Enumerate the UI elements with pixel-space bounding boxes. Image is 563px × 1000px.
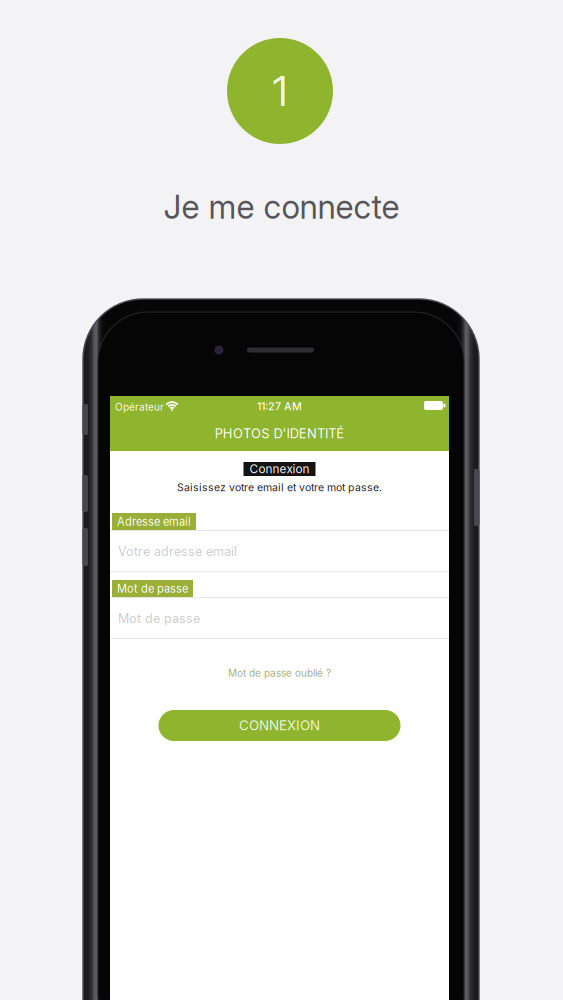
staticText: 1 <box>272 66 287 116</box>
staticText: Votre adresse email <box>118 544 237 559</box>
staticText: Mot de passe oublié ? <box>228 667 331 679</box>
staticText: Adresse email <box>117 515 191 528</box>
button[interactable]: Votre adresse email <box>110 531 449 572</box>
staticText: Mot de passe <box>117 582 188 595</box>
staticText: CONNEXION <box>239 717 320 733</box>
staticText: Saisissez votre email et votre mot passe… <box>177 481 382 494</box>
staticText: Je me connecte <box>163 187 399 227</box>
staticText: Mot de passe <box>118 611 200 626</box>
button[interactable]: Mot de passe <box>110 598 449 639</box>
staticText: PHOTOS D'IDENTITÉ <box>215 426 344 441</box>
staticText: Connexion <box>249 462 309 476</box>
button[interactable]: Connexion <box>243 462 315 476</box>
button[interactable]: CONNEXION <box>158 710 400 741</box>
staticText: 11:27 AM <box>257 400 302 413</box>
staticText: Opérateur <box>115 401 164 413</box>
button[interactable]: Mot de passe oublié ? <box>110 663 449 683</box>
